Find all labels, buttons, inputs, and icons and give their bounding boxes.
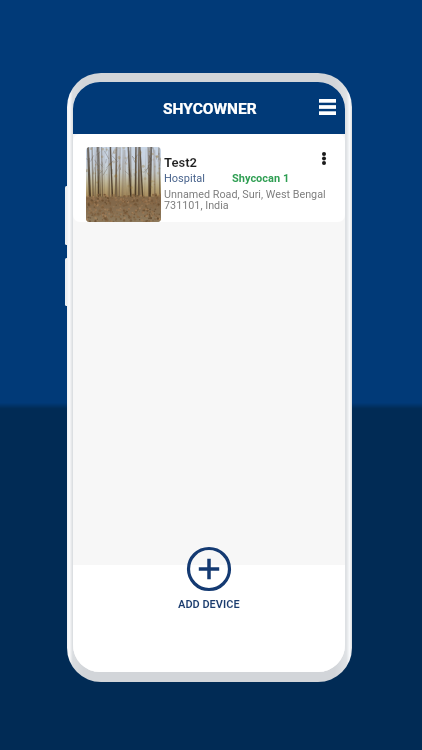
button[interactable]: Menu xyxy=(311,91,343,123)
staticText: Hospital xyxy=(164,172,205,185)
staticText: Test2 xyxy=(164,155,198,170)
button[interactable]: Add device xyxy=(178,546,240,611)
button[interactable]: Test2 xyxy=(73,134,345,222)
button[interactable]: More options xyxy=(315,149,333,167)
staticText: ADD DEVICE xyxy=(178,598,240,611)
staticText: SHYCOWNER xyxy=(163,100,257,118)
staticText: Shycocan 1 xyxy=(232,172,290,185)
staticText: Unnamed Road, Suri, West Bengal 731101, … xyxy=(164,188,326,212)
